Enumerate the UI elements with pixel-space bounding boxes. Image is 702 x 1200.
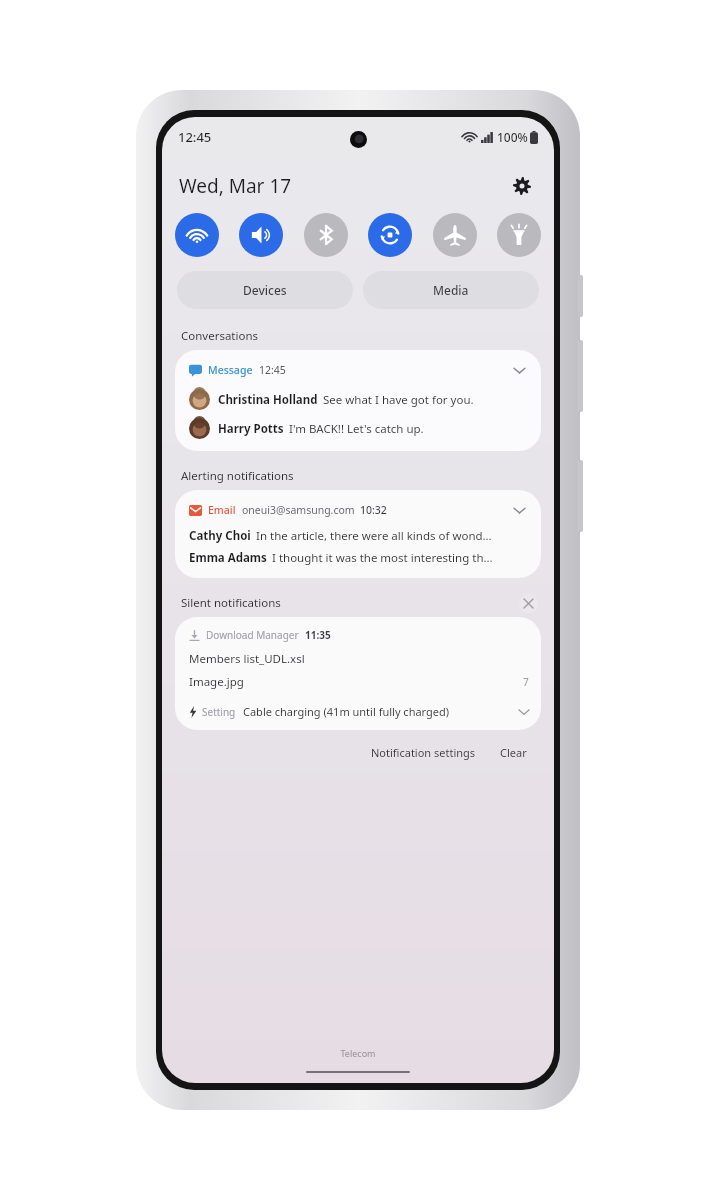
staticText: Alerting notifications: [181, 468, 294, 484]
button[interactable]: Airplane mode: [433, 213, 477, 257]
staticText: I'm BACK!! Let's catch up.: [289, 421, 424, 437]
staticText: See what I have got for you.: [323, 392, 474, 408]
staticText: I thought it was the most interesting th…: [272, 550, 493, 566]
button[interactable]: Download Manager: [189, 628, 529, 642]
button[interactable]: Expand: [509, 360, 529, 380]
staticText: Telecom: [162, 1047, 554, 1059]
button[interactable]: Devices: [177, 271, 353, 309]
staticText: Image.jpg: [189, 674, 244, 690]
staticText: Emma Adams: [189, 550, 267, 566]
button[interactable]: Image.jpg: [189, 674, 529, 690]
button[interactable]: Notification settings: [366, 740, 481, 765]
button[interactable]: Members list_UDL.xsl: [189, 651, 529, 667]
button[interactable]: Clear silent notifications: [519, 594, 538, 613]
button[interactable]: Bluetooth: [304, 213, 348, 257]
staticText: Cathy Choi: [189, 528, 251, 544]
staticText: Message: [208, 363, 253, 377]
staticText: Christina Holland: [218, 392, 318, 408]
button[interactable]: Expand: [509, 500, 529, 520]
staticText: 7: [523, 675, 529, 689]
button[interactable]: Email: [175, 490, 541, 578]
staticText: Clear: [500, 745, 527, 760]
button[interactable]: Sound: [239, 213, 283, 257]
staticText: Setting: [202, 705, 236, 719]
staticText: Notification settings: [371, 745, 476, 760]
button[interactable]: Message: [175, 350, 541, 451]
button[interactable]: Flashlight: [497, 213, 541, 257]
staticText: Email: [208, 503, 236, 517]
staticText: oneui3@samsung.com: [242, 503, 355, 517]
staticText: Conversations: [181, 328, 259, 344]
button[interactable]: Media: [363, 271, 539, 309]
staticText: 11:35: [305, 628, 331, 642]
button[interactable]: Clear: [495, 740, 532, 765]
staticText: 10:32: [360, 503, 387, 517]
staticText: 12:45: [259, 363, 286, 377]
button[interactable]: Auto rotate: [368, 213, 412, 257]
staticText: In the article, there were all kinds of …: [256, 528, 492, 544]
staticText: Harry Potts: [218, 421, 284, 437]
button[interactable]: Setting: [189, 704, 529, 719]
staticText: 100%: [497, 129, 528, 145]
button[interactable]: Settings: [507, 171, 537, 201]
staticText: Cable charging (41m until fully charged): [243, 704, 450, 719]
button[interactable]: Wi-Fi: [175, 213, 219, 257]
staticText: 12:45: [178, 128, 212, 146]
staticText: Silent notifications: [181, 595, 281, 611]
staticText: Download Manager: [206, 628, 299, 642]
staticText: Wed, Mar 17: [179, 173, 292, 199]
staticText: Devices: [243, 282, 287, 298]
staticText: Media: [433, 282, 469, 298]
